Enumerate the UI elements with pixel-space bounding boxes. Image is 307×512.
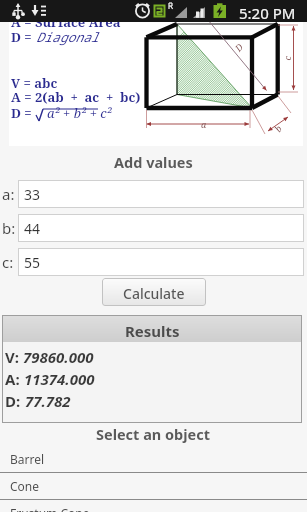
staticText: A: xyxy=(5,369,20,389)
staticText: c xyxy=(280,55,292,60)
staticText: D xyxy=(232,40,245,54)
staticText: 5:20 PM xyxy=(239,3,296,23)
staticText: Frustum Cone xyxy=(10,505,90,512)
staticText: Results xyxy=(125,321,180,341)
staticText: 55 xyxy=(24,253,41,272)
staticText: c: xyxy=(2,252,14,272)
button[interactable]: 55 xyxy=(18,248,304,276)
staticText: A = 2(ab + ac + bc) xyxy=(11,88,141,106)
button[interactable]: Frustum Cone xyxy=(0,500,307,512)
staticText: 77.782 xyxy=(25,391,71,411)
button[interactable]: Barrel xyxy=(0,446,307,473)
staticText: V = abc xyxy=(11,74,58,92)
button[interactable]: 33 xyxy=(18,180,304,208)
staticText: 33 xyxy=(24,185,41,204)
button[interactable]: Cone xyxy=(0,473,307,500)
staticText: 44 xyxy=(24,219,41,238)
staticText: Calculate xyxy=(123,284,185,303)
staticText: a xyxy=(201,118,207,130)
staticText: a² + b² + c² xyxy=(47,104,112,122)
staticText: Diagonal xyxy=(36,28,99,46)
staticText: 79860.000 xyxy=(23,347,94,367)
staticText: Select an object xyxy=(96,424,211,444)
staticText: Barrel xyxy=(10,451,45,467)
staticText: 11374.000 xyxy=(24,369,95,389)
staticText: D = xyxy=(11,28,36,46)
button[interactable]: Calculate xyxy=(102,278,206,306)
staticText: Cone xyxy=(10,478,40,494)
button[interactable]: 44 xyxy=(18,214,304,242)
staticText: D = xyxy=(11,104,36,122)
staticText: V: xyxy=(5,347,19,367)
staticText: A = Surface Area xyxy=(11,13,121,31)
staticText: D: xyxy=(5,391,21,411)
staticText: b xyxy=(271,122,285,134)
staticText: b: xyxy=(2,218,16,238)
staticText: Add values xyxy=(114,152,193,172)
staticText: a: xyxy=(2,184,15,204)
